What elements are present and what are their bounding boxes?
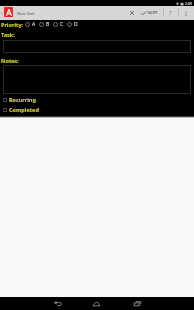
staticText: C (60, 21, 64, 28)
staticText: 2:00 (185, 1, 192, 6)
staticText: B (46, 21, 50, 28)
button[interactable]: Home (83, 297, 110, 310)
button[interactable]: Cancel (125, 6, 139, 20)
staticText: ? (169, 9, 172, 17)
staticText: New Task (17, 11, 35, 16)
staticText: ACCEPT (148, 11, 158, 15)
staticText: Completed (9, 106, 39, 113)
button[interactable]: Help (164, 6, 177, 20)
button[interactable]: C (53, 21, 67, 28)
button[interactable]: Navigate up (0, 6, 4, 20)
button[interactable]: B (39, 21, 53, 28)
button[interactable]: Recurring (0, 96, 36, 104)
button[interactable]: Back (44, 297, 71, 310)
button[interactable]: Notes input (3, 65, 191, 94)
button[interactable]: A (25, 21, 39, 28)
staticText: Recurring (9, 96, 36, 103)
staticText: Notes: (1, 57, 19, 64)
button[interactable]: Task input (3, 40, 191, 53)
staticText: Task: (1, 31, 15, 38)
staticText: A (32, 21, 36, 28)
button[interactable]: ACCEPT (140, 6, 161, 20)
button[interactable]: D (67, 21, 81, 28)
button[interactable]: App icon (4, 7, 13, 17)
staticText: D (74, 21, 78, 28)
button[interactable]: More options (179, 6, 192, 20)
button[interactable]: Recent apps (124, 297, 151, 310)
staticText: Priority: (1, 21, 24, 28)
button[interactable]: Completed (0, 106, 39, 114)
